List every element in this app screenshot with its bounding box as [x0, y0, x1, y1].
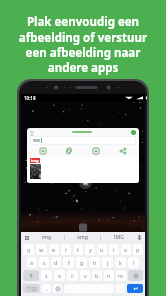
staticText: w — [39, 246, 44, 253]
staticText: q — [27, 246, 31, 253]
button[interactable]: Backspace — [128, 270, 143, 281]
button[interactable]: ?123 — [23, 284, 40, 293]
button[interactable] — [30, 136, 136, 145]
staticText: c — [71, 272, 74, 279]
button[interactable]: , — [42, 284, 51, 293]
button[interactable]: Insert image — [30, 145, 56, 157]
button[interactable]: q — [23, 244, 34, 255]
button[interactable]: i — [109, 244, 119, 255]
button[interactable]: s — [39, 257, 49, 268]
button[interactable]: k — [115, 257, 126, 268]
staticText: o — [124, 246, 128, 253]
button[interactable]: b — [92, 270, 102, 281]
button[interactable]: Share — [109, 145, 136, 157]
button[interactable]: y — [85, 244, 95, 255]
staticText: i — [113, 246, 115, 253]
staticText: 10:18 — [24, 95, 36, 101]
button[interactable]: Enter — [127, 284, 143, 293]
button[interactable]: n — [104, 270, 114, 281]
button[interactable]: w — [36, 244, 47, 255]
staticText: omg — [77, 234, 88, 241]
button[interactable]: . — [116, 284, 125, 293]
button[interactable]: o — [121, 244, 131, 255]
staticText: b — [95, 272, 99, 279]
button[interactable]: img — [30, 232, 64, 243]
button[interactable]: Voice input — [136, 234, 143, 241]
button[interactable]: c — [67, 270, 78, 281]
staticText: l — [133, 259, 135, 266]
staticText: j — [107, 259, 109, 266]
button[interactable]: x — [54, 270, 65, 281]
staticText: k — [119, 259, 122, 266]
button[interactable]: e — [49, 244, 59, 255]
button[interactable]: r — [61, 244, 71, 255]
button[interactable]: l — [128, 257, 139, 268]
button[interactable]: f — [63, 257, 74, 268]
staticText: IMG — [114, 234, 124, 241]
button[interactable]: Copy — [56, 145, 82, 157]
button[interactable]: h — [89, 257, 100, 268]
staticText: g — [80, 259, 84, 266]
button[interactable]: Shift — [23, 270, 39, 281]
staticText: m — [118, 272, 124, 279]
button[interactable]: u — [97, 244, 107, 255]
staticText: r — [65, 246, 68, 253]
button[interactable]: p — [133, 244, 143, 255]
button[interactable]: j — [102, 257, 113, 268]
staticText: img — [42, 234, 52, 241]
staticText: y — [89, 246, 92, 253]
staticText: t — [77, 246, 79, 253]
staticText: f — [68, 259, 70, 266]
staticText: x — [58, 272, 61, 279]
button[interactable]: z — [41, 270, 52, 281]
button[interactable]: g — [76, 257, 87, 268]
button[interactable]: t — [73, 244, 83, 255]
staticText: . — [120, 285, 122, 292]
staticText: u — [100, 246, 104, 253]
button[interactable]: IMG — [101, 232, 136, 243]
button[interactable]: omg — [65, 232, 100, 243]
staticText: a — [30, 259, 34, 266]
button[interactable]: Close — [131, 130, 136, 135]
button[interactable]: m — [116, 270, 126, 281]
staticText: h — [93, 259, 97, 266]
staticText: n — [107, 272, 111, 279]
staticText: img — [31, 158, 39, 163]
staticText: ?123 — [27, 286, 37, 292]
button[interactable]: Emoji — [53, 284, 62, 293]
other: Menu — [30, 130, 34, 134]
staticText: d — [54, 259, 58, 266]
staticText: s — [43, 259, 46, 266]
staticText: v — [84, 272, 87, 279]
button[interactable]: Image preview — [30, 164, 41, 179]
button[interactable]: a — [27, 257, 37, 268]
button[interactable]: v — [80, 270, 90, 281]
button[interactable]: Toolbar — [23, 234, 30, 241]
button[interactable]: d — [51, 257, 61, 268]
staticText: Plak eenvoudig een afbeelding of verstuu… — [8, 14, 158, 75]
staticText: z — [45, 272, 48, 279]
staticText: e — [52, 246, 56, 253]
staticText: , — [46, 285, 48, 292]
button[interactable]: Save — [82, 145, 109, 157]
staticText: p — [136, 246, 140, 253]
